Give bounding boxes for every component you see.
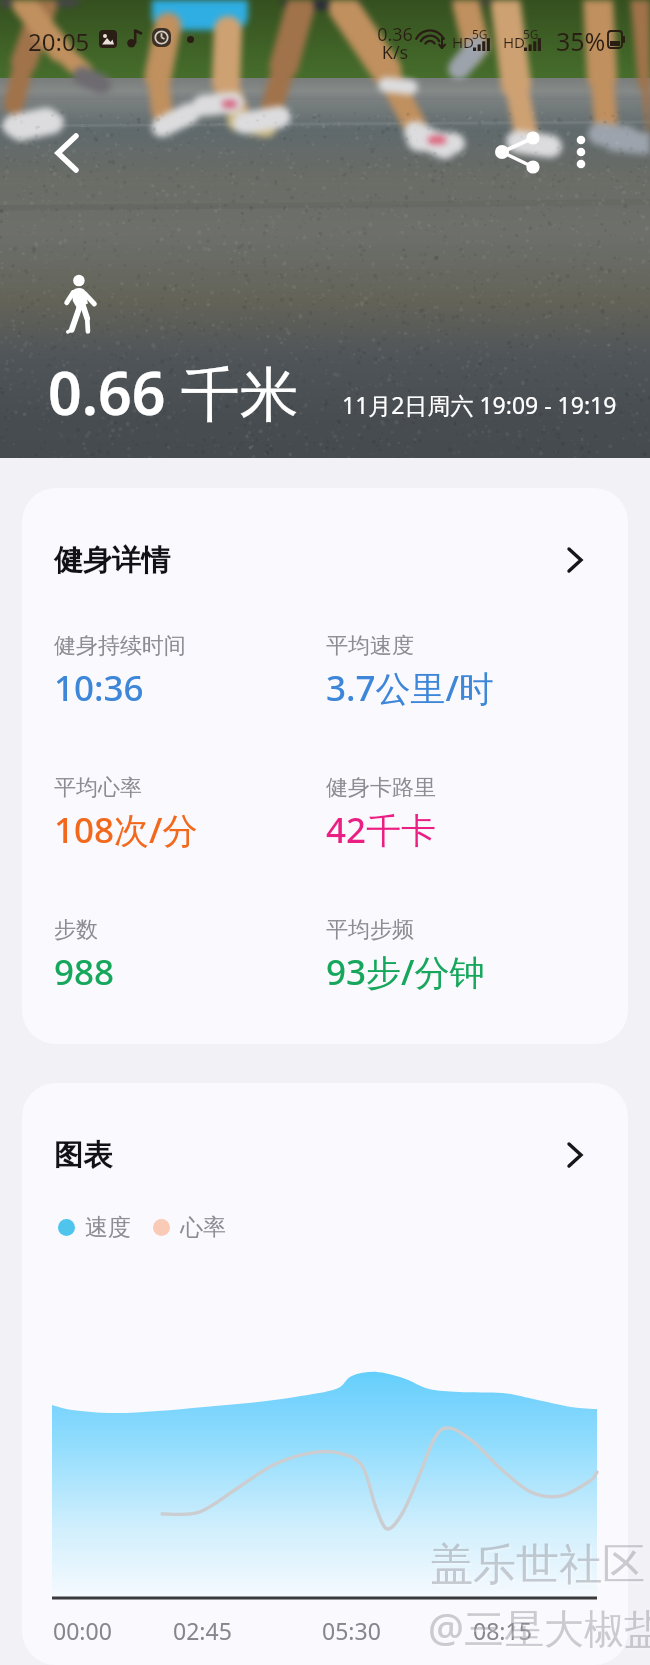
button[interactable]: Share (491, 124, 547, 180)
staticText: 5G (472, 26, 488, 42)
staticText: 11月2日周六 19:09 - 19:19 (342, 389, 617, 420)
staticText: 健身详情 (54, 542, 170, 579)
staticText: 健身持续时间 (54, 632, 186, 660)
staticText: HD (503, 32, 526, 52)
staticText: 108次/分 (54, 806, 198, 854)
staticText: 5G (523, 26, 539, 42)
staticText: 步数 (54, 916, 98, 944)
staticText: 42千卡 (326, 806, 437, 854)
staticText: 速度 (85, 1213, 131, 1242)
staticText: 35% (556, 24, 606, 58)
staticText: 平均步频 (326, 916, 414, 944)
staticText: 02:45 (173, 1615, 232, 1646)
staticText: 盖乐世社区 (432, 1540, 647, 1594)
staticText: 健身卡路里 (326, 774, 436, 802)
staticText: 0.36 K/s (377, 22, 413, 64)
staticText: 00:00 (53, 1615, 112, 1646)
staticText: 心率 (180, 1213, 226, 1242)
button[interactable]: Back (42, 124, 98, 180)
staticText: 08:15 (473, 1615, 532, 1646)
staticText: 0.66 千米 (48, 352, 299, 433)
staticText: HD (452, 32, 475, 52)
staticText: 3.7公里/时 (326, 664, 495, 712)
button[interactable]: More options (553, 124, 609, 180)
staticText: 93步/分钟 (326, 948, 485, 996)
staticText: 平均速度 (326, 632, 414, 660)
staticText: @三星大椒盐 (428, 1600, 650, 1655)
staticText: 988 (54, 948, 115, 996)
button[interactable]: 健身详情 (22, 488, 628, 632)
staticText: 图表 (54, 1137, 112, 1174)
staticText: @三星大椒盐 (430, 1602, 650, 1657)
staticText: 10:36 (54, 664, 144, 712)
button[interactable]: 图表 (22, 1083, 628, 1227)
staticText: 05:30 (322, 1615, 381, 1646)
staticText: 盖乐世社区 (430, 1538, 645, 1592)
staticText: 平均心率 (54, 774, 142, 802)
staticText: 20:05 (28, 25, 90, 58)
